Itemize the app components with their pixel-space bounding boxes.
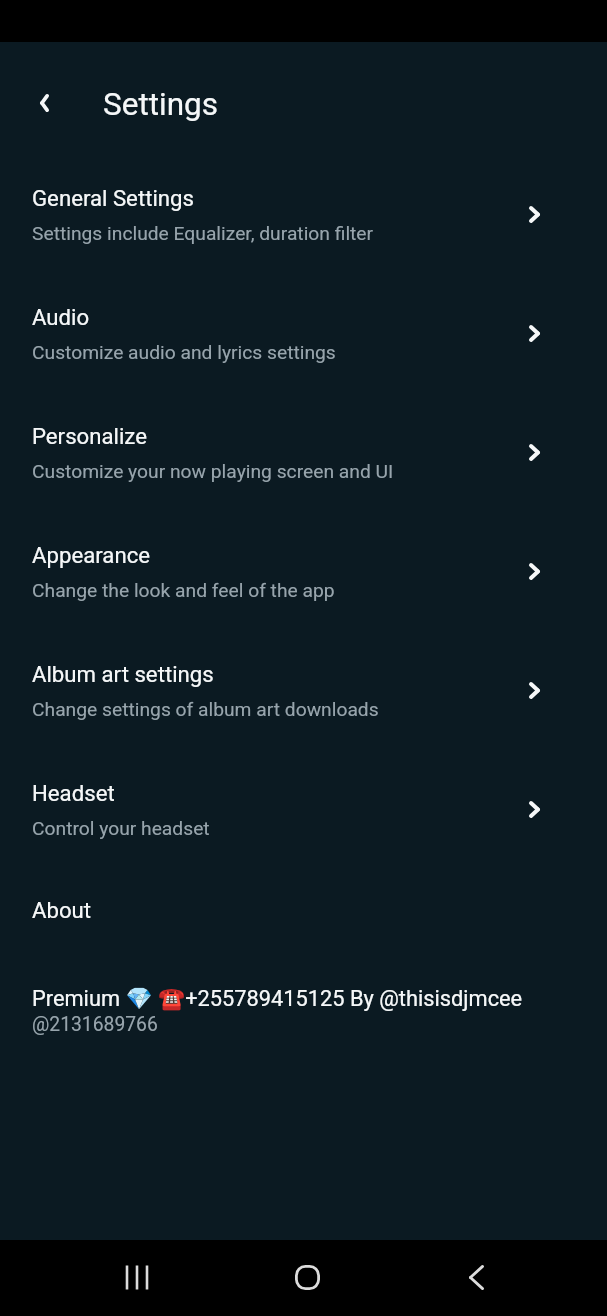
staticText: Premium 💎 ☎️+255789415125 By @thisisdjmc… [32, 986, 523, 1012]
staticText: @2131689766 [32, 1013, 158, 1036]
staticText: Settings [103, 86, 219, 123]
button[interactable]: Back [452, 1253, 500, 1301]
staticText: Customize your now playing screen and UI [32, 460, 394, 483]
staticText: About [32, 897, 92, 923]
button[interactable]: Personalize [0, 416, 607, 535]
button[interactable]: Headset [0, 773, 607, 892]
staticText: Customize audio and lyrics settings [32, 341, 336, 364]
button[interactable]: Audio [0, 297, 607, 416]
button[interactable]: Album art settings [0, 654, 607, 773]
staticText: Appearance [32, 542, 151, 568]
staticText: General Settings [32, 185, 194, 211]
staticText: Audio [32, 304, 90, 330]
staticText: Personalize [32, 423, 147, 449]
staticText: Album art settings [32, 661, 214, 687]
staticText: Control your headset [32, 817, 210, 840]
button[interactable]: Back [22, 81, 66, 125]
button[interactable]: General Settings [0, 178, 607, 297]
staticText: Change settings of album art downloads [32, 698, 379, 721]
button[interactable]: Appearance [0, 535, 607, 654]
button[interactable]: Recent apps [113, 1253, 161, 1301]
button[interactable]: Home [283, 1253, 331, 1301]
button[interactable]: About [0, 892, 607, 977]
staticText: Change the look and feel of the app [32, 579, 335, 602]
staticText: Headset [32, 780, 115, 806]
staticText: Settings include Equalizer, duration fil… [32, 222, 374, 245]
